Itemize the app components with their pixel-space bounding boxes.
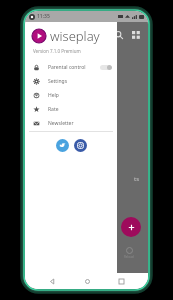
staticText: Parental control <box>48 64 86 71</box>
button[interactable]: Grid view <box>129 28 143 42</box>
button[interactable]: Instagram <box>74 139 87 152</box>
staticText: Rate <box>48 106 59 113</box>
button[interactable]: Home <box>80 274 94 288</box>
button[interactable]: Add <box>121 217 141 237</box>
staticText: Newsletter <box>48 120 74 127</box>
staticText: Help <box>48 92 59 99</box>
button[interactable]: Settings <box>25 74 117 88</box>
button[interactable]: Twitter <box>56 139 69 152</box>
button[interactable]: Rate <box>25 102 117 116</box>
staticText: 11:35 <box>37 13 50 20</box>
button[interactable]: Search <box>112 28 126 42</box>
button[interactable]: Recents <box>114 274 128 288</box>
staticText: wiseplay <box>50 27 100 45</box>
button[interactable]: Back <box>45 274 59 288</box>
staticText: Settings <box>48 78 68 85</box>
staticText: Reload <box>124 255 134 259</box>
staticText: Version 7.1.0 Premium <box>33 48 81 54</box>
button[interactable]: Help <box>25 88 117 102</box>
button[interactable]: Newsletter <box>25 116 117 130</box>
staticText: ts <box>134 175 140 183</box>
button[interactable]: Parental control <box>25 60 117 74</box>
